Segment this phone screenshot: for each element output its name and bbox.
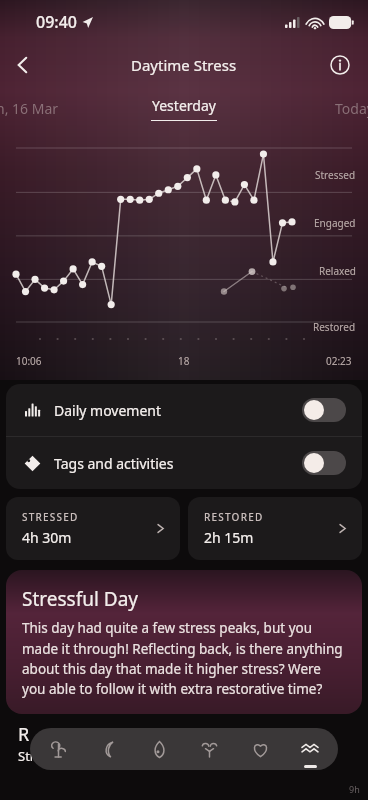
staticText: Restored bbox=[313, 320, 356, 334]
button[interactable]: Daily movement toggle bbox=[302, 398, 346, 422]
staticText: This day had quite a few stress peaks, b… bbox=[22, 619, 346, 698]
staticText: Relaxed bbox=[319, 264, 356, 278]
button[interactable]: Daily movement bbox=[6, 384, 362, 436]
staticText: Stressful Day bbox=[22, 586, 139, 612]
button[interactable]: Stress bbox=[287, 728, 333, 770]
staticText: 9h bbox=[349, 783, 360, 795]
button[interactable]: Readiness bbox=[136, 728, 182, 770]
button[interactable]: n, 16 Mar bbox=[0, 99, 59, 118]
staticText: 02:23 bbox=[326, 354, 352, 368]
staticText: Stress and Restorative Time bbox=[18, 747, 187, 765]
staticText: 2h 15m bbox=[204, 528, 254, 547]
staticText: 10:06 bbox=[16, 354, 42, 368]
button[interactable]: Sleep bbox=[85, 728, 131, 770]
button[interactable]: Stressful Day bbox=[6, 570, 362, 714]
button[interactable]: RESTORED bbox=[188, 497, 362, 560]
staticText: Daily movement bbox=[54, 401, 162, 420]
button[interactable]: Activity bbox=[35, 728, 81, 770]
button[interactable]: Tags and activities bbox=[6, 437, 362, 489]
staticText: R bbox=[18, 722, 30, 747]
button[interactable]: STRESSED bbox=[6, 497, 180, 560]
staticText: Tags and activities bbox=[54, 454, 174, 473]
staticText: 09:40 bbox=[36, 11, 77, 33]
staticText: Yesterday bbox=[152, 96, 216, 115]
button[interactable]: Yesterday bbox=[151, 96, 217, 121]
staticText: Daytime Stress bbox=[131, 55, 237, 75]
staticText: Engaged bbox=[314, 216, 356, 230]
button[interactable]: Body bbox=[186, 728, 232, 770]
staticText: Stressed bbox=[315, 168, 356, 182]
button[interactable]: Back bbox=[2, 44, 44, 86]
staticText: STRESSED bbox=[22, 510, 79, 524]
button[interactable]: Today bbox=[335, 99, 368, 118]
staticText: 18 bbox=[178, 354, 190, 368]
staticText: 4h 30m bbox=[22, 528, 72, 547]
button[interactable]: Information bbox=[320, 45, 360, 85]
button[interactable]: Tags and activities toggle bbox=[302, 451, 346, 475]
staticText: RESTORED bbox=[204, 510, 264, 524]
button[interactable]: Heart rate bbox=[237, 728, 283, 770]
